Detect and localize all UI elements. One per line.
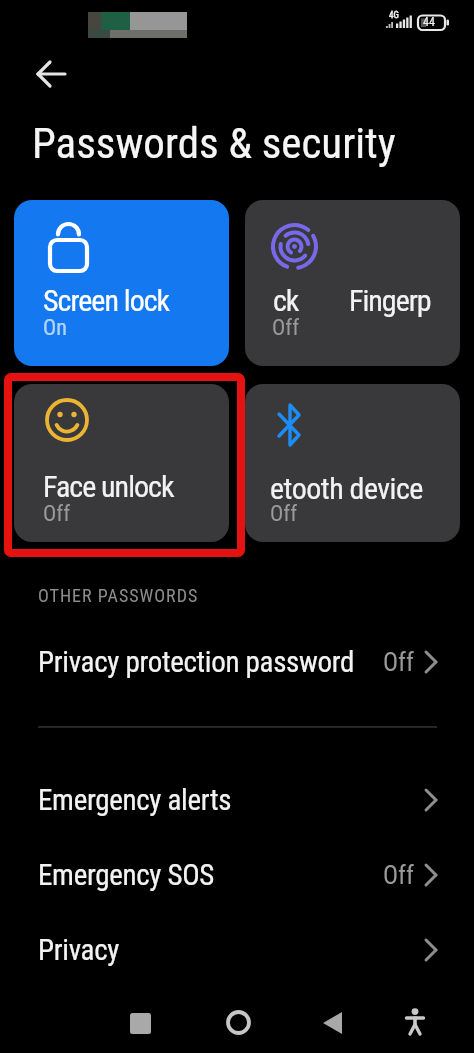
staticText: Screen lock: [43, 283, 170, 318]
staticText: On: [43, 315, 67, 341]
staticText: Off: [383, 648, 414, 677]
button[interactable]: Screen lock: [14, 200, 229, 366]
staticText: 44: [423, 15, 435, 29]
button[interactable]: [125, 1008, 155, 1038]
button[interactable]: Privacy protection password: [0, 630, 474, 694]
button[interactable]: Face unlock: [14, 384, 229, 542]
button[interactable]: [318, 1008, 348, 1038]
staticText: Passwords & security: [32, 118, 396, 168]
staticText: Off: [272, 315, 300, 341]
staticText: Fingerp: [349, 283, 431, 318]
staticText: Face unlock: [43, 469, 174, 504]
staticText: Off: [43, 501, 71, 527]
staticText: Privacy: [38, 933, 424, 967]
button[interactable]: [400, 1006, 430, 1036]
staticText: Privacy protection password: [38, 645, 383, 679]
staticText: Emergency alerts: [38, 783, 424, 817]
button[interactable]: etooth device: [245, 384, 460, 542]
staticText: Off: [270, 501, 298, 527]
button[interactable]: [222, 1006, 254, 1038]
button[interactable]: ck: [245, 200, 460, 366]
button[interactable]: Emergency alerts: [0, 768, 474, 832]
button[interactable]: [28, 52, 72, 96]
button[interactable]: Emergency SOS: [0, 843, 474, 907]
button[interactable]: Privacy: [0, 918, 474, 982]
staticText: Off: [383, 861, 414, 890]
staticText: etooth device: [270, 471, 423, 506]
staticText: ck: [273, 283, 299, 318]
staticText: 4G: [389, 10, 399, 21]
staticText: Emergency SOS: [38, 858, 383, 892]
staticText: OTHER PASSWORDS: [38, 585, 199, 606]
